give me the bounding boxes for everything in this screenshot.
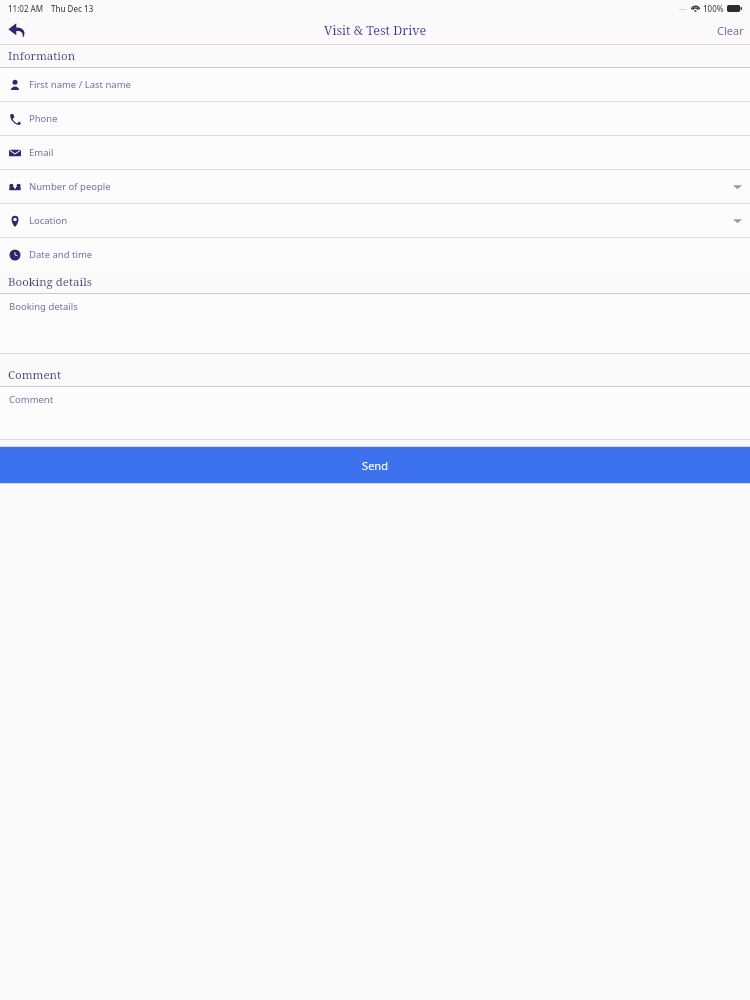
- staticText: Clear: [717, 23, 744, 38]
- staticText: Information: [8, 48, 76, 64]
- button[interactable]: Location: [0, 204, 750, 237]
- staticText: ....: [679, 3, 687, 13]
- staticText: Number of people: [29, 180, 111, 193]
- staticText: Email: [29, 146, 54, 159]
- staticText: Phone: [29, 112, 58, 125]
- button[interactable]: Send: [0, 447, 750, 483]
- staticText: Booking details: [9, 300, 78, 313]
- staticText: 11:02 AM: [8, 3, 44, 14]
- button[interactable]: Date and time: [0, 238, 750, 271]
- button[interactable]: Number of people: [0, 170, 750, 203]
- button[interactable]: Comment: [0, 387, 750, 439]
- staticText: 100%: [703, 3, 724, 14]
- staticText: Location: [29, 214, 68, 227]
- button[interactable]: Phone: [0, 102, 750, 135]
- staticText: Send: [362, 458, 388, 473]
- staticText: Booking details: [8, 274, 92, 290]
- staticText: Thu Dec 13: [51, 3, 94, 14]
- button[interactable]: Back: [0, 16, 34, 44]
- staticText: Date and time: [29, 248, 93, 261]
- staticText: Visit & Test Drive: [324, 22, 427, 39]
- button[interactable]: Email: [0, 136, 750, 169]
- staticText: Comment: [9, 393, 54, 406]
- staticText: Comment: [8, 367, 62, 383]
- button[interactable]: Clear: [713, 19, 748, 42]
- button[interactable]: Booking details: [0, 294, 750, 353]
- button[interactable]: First name / Last name: [0, 68, 750, 101]
- staticText: First name / Last name: [29, 78, 131, 91]
